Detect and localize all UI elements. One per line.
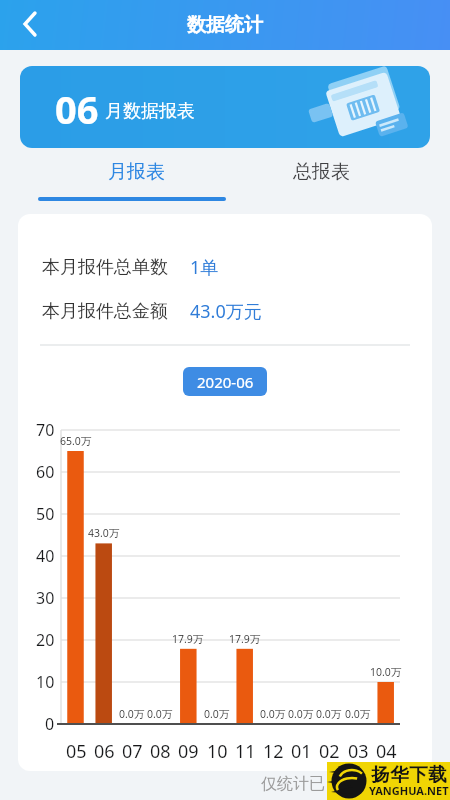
staticText: 02 xyxy=(319,739,340,761)
staticText: 01 xyxy=(291,739,312,761)
staticText: 0.0万 xyxy=(260,707,286,721)
staticText: 0.0万 xyxy=(204,707,230,721)
staticText: 10 xyxy=(36,671,55,693)
staticText: 06 xyxy=(94,739,115,761)
staticText: 70 xyxy=(36,419,55,441)
staticText: 30 xyxy=(36,587,55,609)
staticText: 17.9万 xyxy=(172,632,204,646)
staticText: 20 xyxy=(36,629,55,651)
staticText: 10 xyxy=(207,739,228,761)
staticText: 43.0万 xyxy=(88,526,120,540)
staticText: 09 xyxy=(178,739,199,761)
button[interactable]: 月报表 xyxy=(35,150,237,194)
button[interactable] xyxy=(14,6,52,44)
staticText: 50 xyxy=(36,503,55,525)
staticText: 40 xyxy=(36,545,55,567)
staticText: 60 xyxy=(36,461,55,483)
staticText: 本月报件总单数 xyxy=(42,256,168,279)
button[interactable]: 06 xyxy=(20,66,430,148)
staticText: 数据统计 xyxy=(187,13,263,37)
staticText: 04 xyxy=(376,739,397,761)
staticText: 0.0万 xyxy=(316,707,342,721)
staticText: 12 xyxy=(263,739,284,761)
staticText: 0.0万 xyxy=(119,707,145,721)
staticText: 0 xyxy=(45,713,55,735)
staticText: 43.0万元 xyxy=(190,299,262,324)
staticText: 扬华下载 xyxy=(371,763,447,783)
staticText: 17.9万 xyxy=(229,632,261,646)
staticText: 总报表 xyxy=(293,160,350,184)
staticText: 本月报件总金额 xyxy=(42,300,168,323)
staticText: 11 xyxy=(235,739,256,761)
staticText: 0.0万 xyxy=(345,707,371,721)
staticText: 0.0万 xyxy=(147,707,173,721)
staticText: 1单 xyxy=(190,255,219,280)
staticText: 06 xyxy=(55,83,99,135)
staticText: 2020-06 xyxy=(197,372,254,392)
staticText: 10.0万 xyxy=(370,665,402,679)
staticText: 月数据报表 xyxy=(105,100,195,123)
staticText: 65.0万 xyxy=(60,434,92,448)
button[interactable]: 2020-06 xyxy=(183,367,267,396)
staticText: YANGHUA.NET xyxy=(369,783,449,797)
staticText: 05 xyxy=(66,739,87,761)
staticText: 03 xyxy=(348,739,369,761)
staticText: 月报表 xyxy=(108,160,165,184)
staticText: 08 xyxy=(150,739,171,761)
staticText: 0.0万 xyxy=(288,707,314,721)
staticText: 仅统计已 xyxy=(261,774,325,794)
staticText: 07 xyxy=(122,739,143,761)
button[interactable]: 总报表 xyxy=(220,150,422,194)
